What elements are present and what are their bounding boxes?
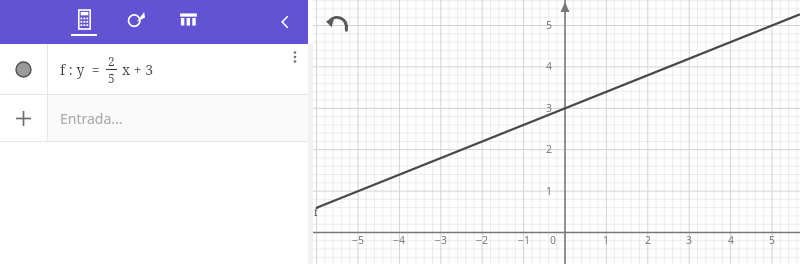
staticText: 3 [539, 101, 559, 115]
button[interactable]: Table [170, 0, 206, 44]
staticText: 1 [539, 184, 559, 198]
staticText: x + 3 [122, 60, 154, 79]
staticText: 4 [721, 233, 741, 247]
staticText: 1 [596, 233, 616, 247]
staticText: 5 [108, 70, 115, 86]
staticText: 2 [108, 53, 115, 69]
button[interactable]: Geometry [118, 0, 154, 44]
staticText: −3 [431, 233, 451, 247]
staticText: 2 [638, 233, 658, 247]
button[interactable]: f : y = [0, 44, 308, 95]
staticText: −2 [472, 233, 492, 247]
staticText: 4 [539, 59, 559, 73]
staticText: f [314, 205, 318, 219]
staticText: 5 [762, 233, 782, 247]
staticText: −5 [348, 233, 368, 247]
button[interactable]: Entrada... [0, 95, 308, 142]
button[interactable]: Undo [324, 10, 352, 38]
staticText: 0 [543, 233, 563, 247]
staticText: 5 [539, 18, 559, 32]
staticText: f : y = [60, 60, 100, 79]
button[interactable]: Collapse panel [270, 7, 300, 37]
button[interactable]: Calculator [66, 0, 102, 44]
staticText: 3 [679, 233, 699, 247]
staticText: 2 [539, 142, 559, 156]
button[interactable]: More options [284, 46, 306, 68]
staticText: Entrada... [60, 109, 123, 128]
staticText: −1 [514, 233, 534, 247]
staticText: −4 [389, 233, 409, 247]
